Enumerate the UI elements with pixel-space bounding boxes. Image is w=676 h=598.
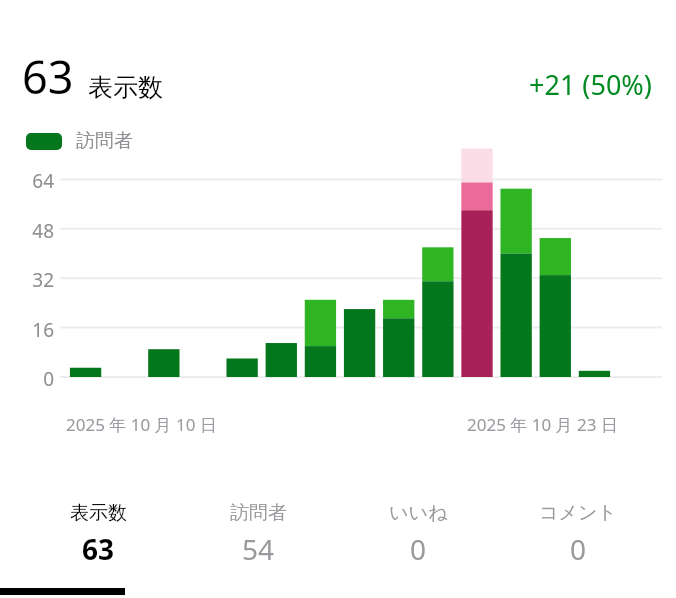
staticText: +21 (50%) [529,66,652,103]
staticText: 48 [32,218,54,244]
staticText: 表示数 [70,501,127,525]
staticText: 訪問者 [230,501,287,525]
staticText: 32 [32,267,54,293]
staticText: 表示数 [88,72,163,103]
button[interactable]: いいね [338,501,498,568]
button[interactable]: Views chart [0,167,676,413]
staticText: 2025 年 10 月 10 日 [66,413,217,436]
button[interactable]: 訪問者 [26,129,133,153]
staticText: 0 [410,530,427,568]
staticText: 16 [32,317,54,343]
staticText: 0 [43,366,54,392]
staticText: 54 [242,530,275,568]
button[interactable]: 表示数 [18,501,178,568]
staticText: 63 [22,46,74,107]
button[interactable]: コメント [498,501,658,568]
staticText: コメント [539,501,617,525]
staticText: 63 [82,530,115,568]
staticText: 訪問者 [76,129,133,153]
staticText: 2025 年 10 月 23 日 [467,413,618,436]
button[interactable]: 訪問者 [178,501,338,568]
staticText: いいね [389,501,448,525]
staticText: 0 [570,530,587,568]
staticText: 64 [32,168,54,194]
